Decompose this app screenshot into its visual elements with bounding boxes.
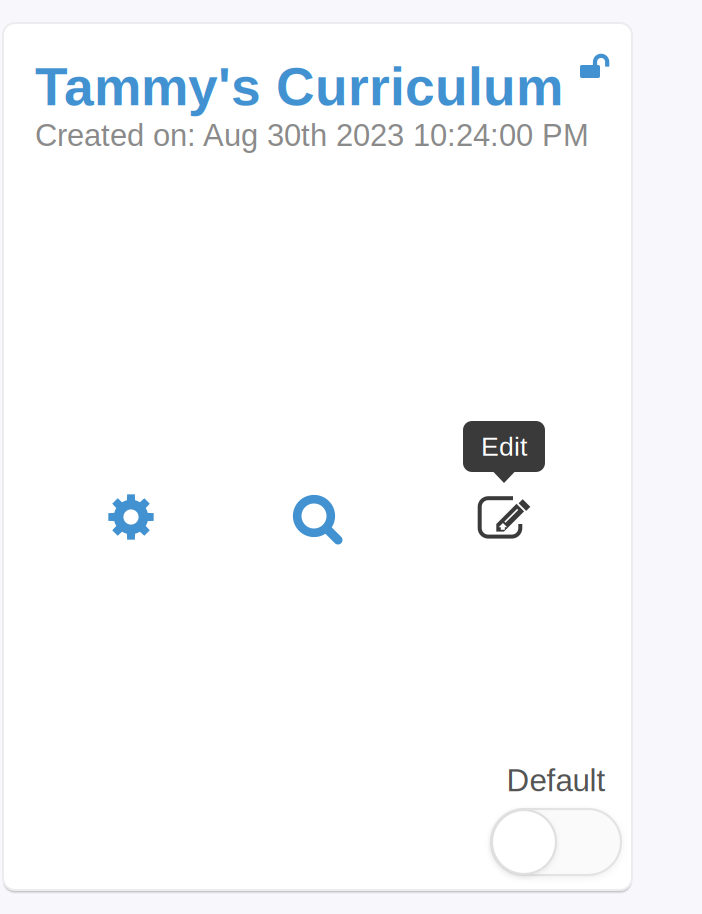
button[interactable]: Unlocked: [580, 52, 609, 78]
button[interactable]: Settings: [108, 494, 154, 540]
staticText: Created on: Aug 30th 2023 10:24:00 PM: [35, 118, 589, 153]
button[interactable]: Edit: [463, 421, 545, 539]
staticText: Default: [506, 763, 605, 798]
staticText: Edit: [481, 432, 527, 461]
staticText: Tammy's Curriculum: [35, 57, 563, 117]
button[interactable]: Search: [293, 495, 343, 545]
button[interactable]: Default: [491, 809, 621, 875]
